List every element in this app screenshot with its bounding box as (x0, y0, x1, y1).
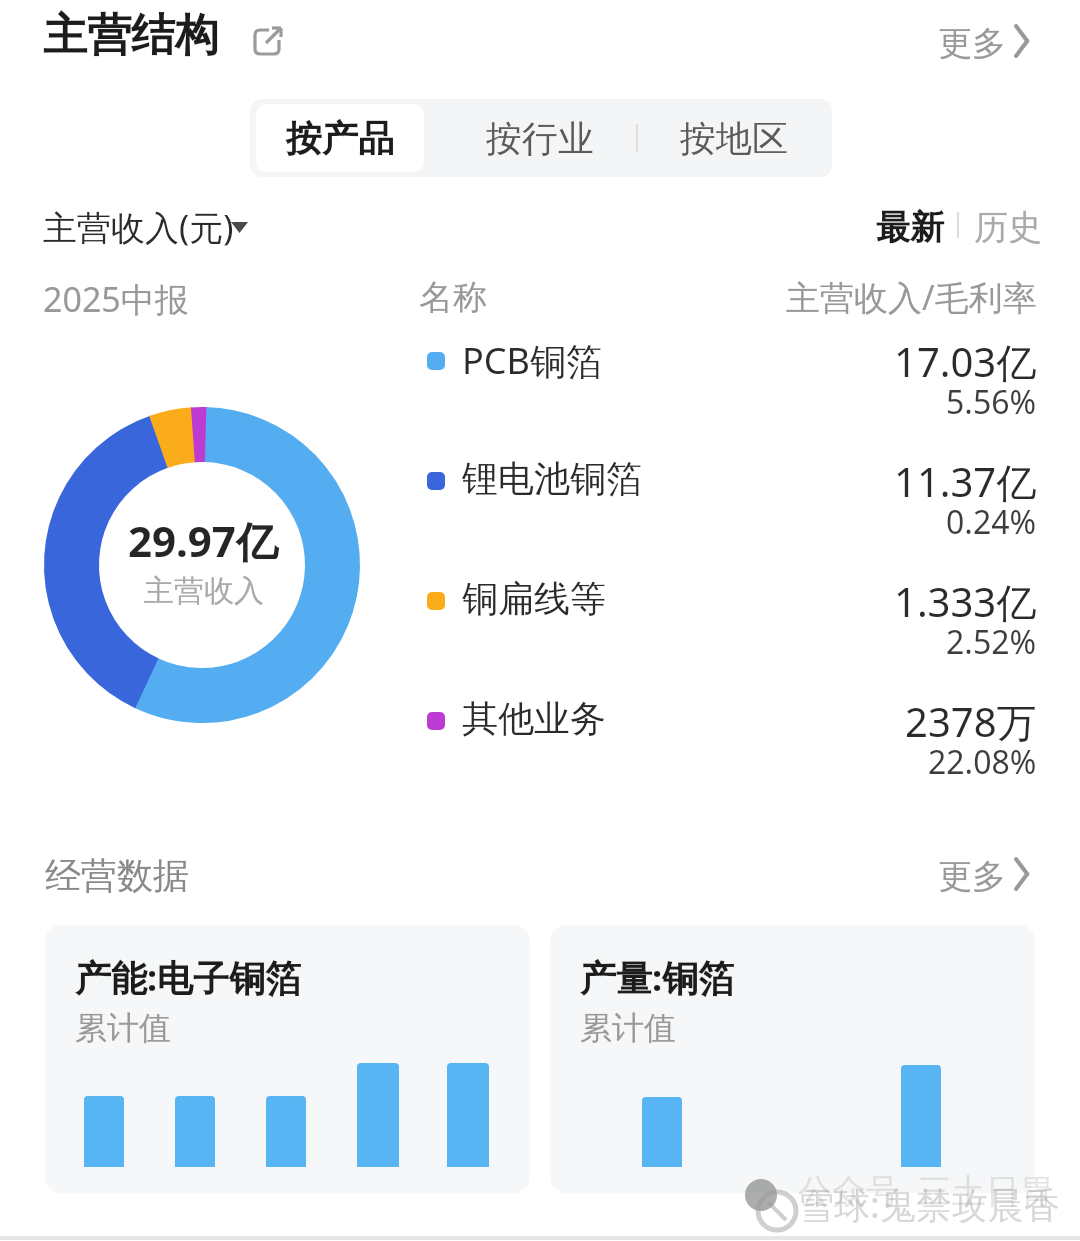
staticText: 铜扁线等 (462, 576, 606, 621)
staticText: 0.24% (946, 500, 1037, 544)
staticText: 最新 (876, 206, 944, 249)
staticText: 主营结构 (43, 8, 219, 63)
staticText: 1.333亿 (894, 574, 1037, 629)
staticText: 主营收入/毛利率 (786, 274, 1037, 320)
staticText: 22.08% (928, 740, 1037, 784)
staticText: 更多 (938, 855, 1006, 898)
staticText: 按行业 (486, 116, 594, 161)
staticText: 锂电池铜箔 (462, 456, 642, 501)
staticText: 产量:铜箔 (580, 953, 735, 1002)
staticText: 2025中报 (43, 276, 189, 322)
staticText: 公众号 三土日胃 (798, 1167, 1054, 1213)
staticText: 按地区 (680, 116, 788, 161)
staticText: 累计值 (580, 1008, 676, 1048)
staticText: 累计值 (75, 1008, 171, 1048)
staticText: 2378万 (905, 694, 1037, 749)
staticText: 按产品 (286, 116, 394, 161)
staticText: 经营数据 (45, 853, 189, 898)
staticText: 2.52% (946, 620, 1037, 664)
staticText: 名称 (419, 276, 487, 319)
staticText: PCB铜箔 (462, 336, 602, 385)
staticText: 更多 (938, 22, 1006, 65)
staticText: 其他业务 (462, 696, 606, 741)
staticText: 5.56% (946, 380, 1037, 424)
staticText: 历史 (974, 206, 1042, 249)
staticText: 主营收入(元) (43, 204, 234, 250)
staticText: 主营收入 (144, 572, 264, 610)
staticText: 17.03亿 (894, 334, 1037, 389)
staticText: 29.97亿 (128, 512, 278, 569)
staticText: 雪球:鬼禁攻晨香 (798, 1180, 1060, 1229)
staticText: 11.37亿 (894, 454, 1037, 509)
staticText: 产能:电子铜箔 (75, 953, 302, 1002)
